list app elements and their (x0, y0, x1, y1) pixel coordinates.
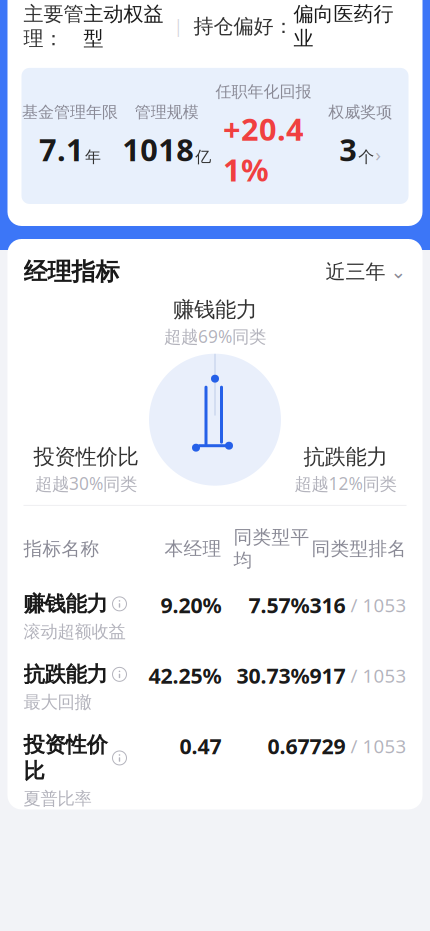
staticText: 抗跌能力 (23, 661, 107, 687)
staticText: 偏向医药行业 (293, 2, 393, 51)
staticText: 316 (309, 591, 345, 619)
staticText: 赚钱能力 (23, 591, 107, 617)
button[interactable]: 基金管理年限 (21, 68, 408, 204)
button[interactable]: 赚钱能力 (7, 572, 422, 642)
button[interactable]: 投资性价比 (7, 713, 422, 809)
button[interactable]: 抗跌能力 (7, 642, 422, 713)
staticText: 1018 (122, 129, 194, 170)
staticText: 亿 (195, 147, 211, 167)
staticText: / 1053 (345, 733, 406, 758)
staticText: 投资性价比 (23, 732, 107, 784)
staticText: › (375, 142, 381, 167)
button[interactable]: 近三年 (325, 259, 406, 284)
staticText: 同类型平均 (233, 526, 309, 572)
staticText: 权威奖项 (328, 102, 392, 122)
staticText: | (163, 15, 193, 38)
staticText: 0.67 (267, 732, 309, 760)
staticText: ⌄ (390, 261, 406, 282)
staticText: 任职年化回报 (215, 82, 311, 102)
staticText: / 1053 (345, 592, 406, 617)
staticText: 0.47 (179, 732, 221, 760)
staticText: 超越69%同类 (164, 325, 266, 348)
staticText: 指标名称 (23, 537, 99, 560)
staticText: 3 (339, 129, 357, 170)
staticText: 超越12%同类 (294, 472, 396, 495)
staticText: 基金管理年限 (22, 102, 118, 122)
staticText: 夏普比率 (23, 788, 91, 809)
staticText: 抗跌能力 (303, 444, 387, 470)
staticText: 超越30%同类 (35, 472, 137, 495)
staticText: 30.73% (236, 661, 309, 690)
staticText: 7.1 (39, 129, 84, 170)
staticText: 持仓偏好： (193, 14, 293, 39)
staticText: 最大回撤 (23, 691, 91, 713)
staticText: 年 (85, 147, 101, 167)
staticText: 主动权益型 (83, 2, 163, 51)
staticText: 7.57% (248, 591, 309, 619)
staticText: 主要管理： (23, 2, 83, 51)
staticText: 本经理 (164, 537, 221, 560)
staticText: 经理指标 (23, 257, 119, 286)
staticText: 滚动超额收益 (23, 621, 125, 642)
staticText: 赚钱能力 (173, 296, 257, 323)
staticText: / 1053 (345, 663, 406, 688)
staticText: 917 (309, 661, 345, 690)
staticText: 投资性价比 (33, 444, 138, 470)
staticText: 同类型排名 (311, 537, 406, 560)
staticText: 42.25% (148, 661, 221, 690)
staticText: 个 (358, 147, 374, 167)
staticText: 近三年 (325, 259, 385, 284)
staticText: 729 (309, 732, 345, 760)
staticText: 9.20% (160, 591, 221, 619)
staticText: 管理规模 (135, 102, 199, 122)
staticText: +20.41% (223, 108, 304, 190)
